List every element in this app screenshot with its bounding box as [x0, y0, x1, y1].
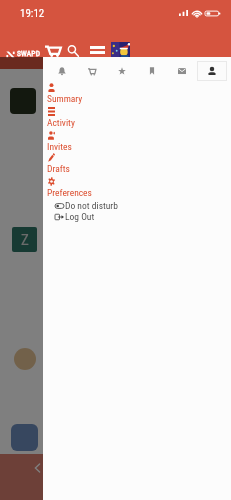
- staticText: Do not disturb: [65, 200, 118, 211]
- button[interactable]: Activity: [43, 107, 231, 130]
- button[interactable]: Log Out: [55, 211, 95, 222]
- staticText: SWAPD: [17, 49, 41, 58]
- button[interactable]: Do not disturb: [55, 200, 118, 211]
- button[interactable]: Profile: [197, 61, 227, 81]
- staticText: Z: [21, 231, 29, 249]
- button[interactable]: Invites: [43, 131, 231, 154]
- staticText: Invites: [47, 141, 72, 152]
- staticText: Drafts: [47, 163, 70, 174]
- button[interactable]: Notifications: [47, 61, 77, 81]
- button[interactable]: Summary: [43, 83, 231, 106]
- button[interactable]: Drafts: [43, 153, 231, 176]
- button[interactable]: Messages: [167, 61, 197, 81]
- button[interactable]: Bookmarks: [137, 61, 167, 81]
- staticText: Log Out: [65, 211, 95, 222]
- staticText: 19:12: [20, 7, 45, 20]
- button[interactable]: Preferences: [43, 177, 231, 200]
- button[interactable]: Favourites: [107, 61, 137, 81]
- staticText: Preferences: [47, 187, 92, 198]
- button[interactable]: Cart: [77, 61, 107, 81]
- staticText: Summary: [47, 93, 83, 104]
- staticText: Activity: [47, 117, 75, 128]
